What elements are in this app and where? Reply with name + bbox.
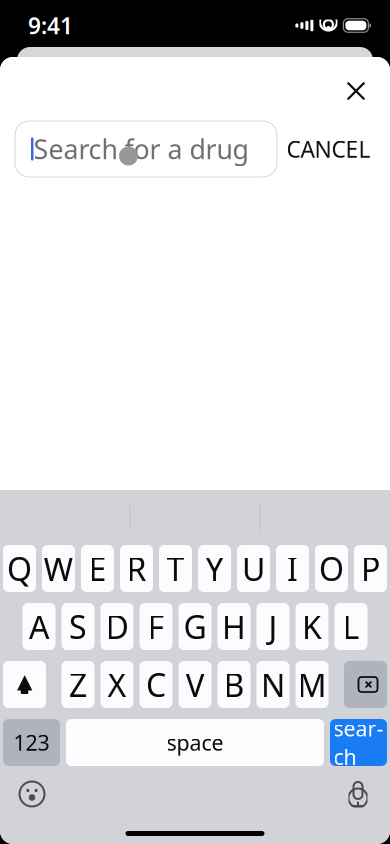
staticText: Z	[69, 663, 87, 706]
staticText: search	[333, 714, 383, 771]
staticText: H	[222, 605, 246, 648]
button[interactable]: Z	[61, 661, 94, 708]
button[interactable]: Emoji	[10, 774, 54, 814]
staticText: 123	[13, 728, 49, 757]
staticText: C	[146, 663, 166, 706]
button[interactable]: Shift	[3, 661, 46, 708]
button[interactable]: R	[120, 545, 153, 592]
button[interactable]: C	[139, 661, 172, 708]
button[interactable]: O	[315, 545, 348, 592]
staticText: V	[185, 663, 204, 706]
button[interactable]: W	[42, 545, 75, 592]
button[interactable]: I	[276, 545, 309, 592]
button[interactable]: V	[178, 661, 211, 708]
button[interactable]: E	[81, 545, 114, 592]
staticText: B	[223, 663, 244, 706]
staticText: N	[261, 663, 285, 706]
button[interactable]: Close	[334, 69, 378, 113]
button[interactable]: Y	[198, 545, 231, 592]
staticText: 9:41	[28, 10, 73, 40]
staticText: W	[43, 547, 73, 590]
staticText: P	[361, 547, 380, 590]
button[interactable]: space	[66, 719, 324, 766]
button[interactable]: U	[237, 545, 270, 592]
staticText: J	[268, 605, 277, 648]
button[interactable]: N	[256, 661, 289, 708]
button[interactable]: 123	[3, 719, 60, 766]
button[interactable]: K	[295, 603, 328, 650]
staticText: A	[29, 605, 49, 648]
button[interactable]: Delete	[344, 661, 387, 708]
button[interactable]: X	[100, 661, 133, 708]
button[interactable]: H	[217, 603, 250, 650]
button[interactable]: T	[159, 545, 192, 592]
staticText: M	[297, 663, 326, 706]
button[interactable]: G	[178, 603, 211, 650]
staticText: L	[342, 605, 359, 648]
button[interactable]: D	[100, 603, 133, 650]
button[interactable]: J	[256, 603, 289, 650]
staticText: F	[147, 605, 164, 648]
staticText: Search for a drug	[33, 131, 248, 167]
staticText: G	[183, 605, 206, 648]
staticText: X	[107, 663, 126, 706]
staticText: space	[166, 728, 223, 757]
staticText: O	[319, 547, 344, 590]
staticText: D	[105, 605, 128, 648]
button[interactable]: P	[354, 545, 387, 592]
button[interactable]: L	[334, 603, 367, 650]
button[interactable]: Search for a drug	[15, 121, 277, 177]
staticText: S	[69, 605, 87, 648]
staticText: R	[126, 547, 146, 590]
staticText: I	[287, 547, 298, 590]
button[interactable]: CANCEL	[277, 121, 380, 177]
staticText: K	[302, 605, 322, 648]
button[interactable]: M	[295, 661, 328, 708]
button[interactable]: Q	[3, 545, 36, 592]
staticText: E	[88, 547, 106, 590]
staticText: CANCEL	[286, 134, 370, 164]
button[interactable]: B	[217, 661, 250, 708]
staticText: T	[166, 547, 184, 590]
staticText: U	[242, 547, 265, 590]
button[interactable]: S	[61, 603, 94, 650]
button[interactable]: A	[22, 603, 55, 650]
button[interactable]: search	[330, 719, 387, 766]
button[interactable]: Dictate	[336, 774, 380, 814]
staticText: Y	[205, 547, 223, 590]
staticText: Q	[7, 547, 32, 590]
button[interactable]: F	[139, 603, 172, 650]
staticText: ▲	[17, 670, 32, 692]
